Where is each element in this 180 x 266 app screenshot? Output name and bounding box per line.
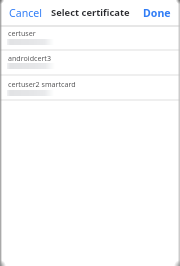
button[interactable]: Done: [137, 2, 180, 24]
staticText: Select certificate: [51, 6, 130, 19]
staticText: androidcert3: [8, 53, 51, 63]
button[interactable]: certuser: [0, 27, 180, 49]
staticText: certuser2 smartcard: [8, 79, 76, 89]
button[interactable]: androidcert3: [0, 51, 180, 74]
staticText: certuser: [8, 28, 36, 38]
button[interactable]: certuser2 smartcard: [0, 76, 180, 99]
button[interactable]: Cancel: [0, 2, 48, 24]
